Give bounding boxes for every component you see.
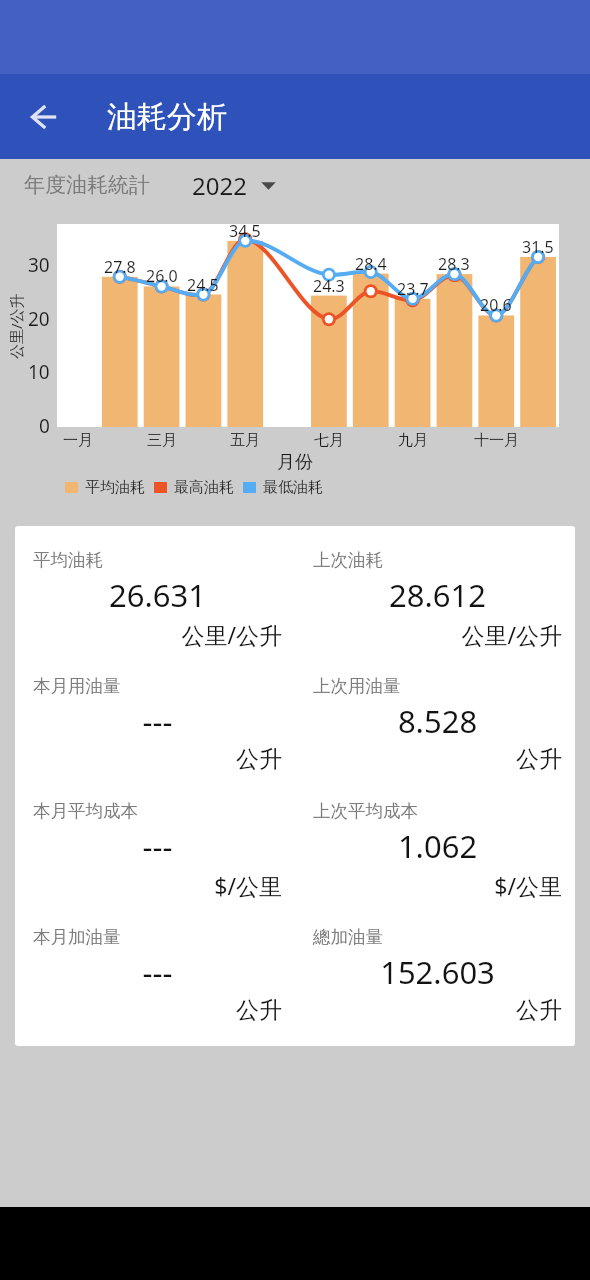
staticText: 公里/公升	[313, 619, 562, 650]
staticText: 10	[28, 359, 50, 385]
staticText: 公里/公升	[6, 293, 26, 359]
staticText: 總加油量	[313, 926, 383, 948]
staticText: 公升	[313, 996, 562, 1025]
staticText: 26.0	[146, 265, 178, 287]
staticText: 最低油耗	[263, 478, 323, 497]
staticText: 24.3	[313, 275, 345, 297]
staticText: 平均油耗	[33, 549, 103, 571]
staticText: 平均油耗	[85, 478, 145, 497]
staticText: 152.603	[313, 951, 562, 993]
staticText: 1.062	[313, 825, 562, 867]
staticText: 公升	[33, 996, 282, 1025]
staticText: 8.528	[313, 700, 562, 742]
staticText: 28.612	[313, 574, 562, 616]
staticText: 公升	[313, 745, 562, 774]
staticText: 0	[39, 413, 50, 439]
staticText: 26.631	[33, 574, 282, 616]
staticText: 五月	[230, 431, 260, 450]
staticText: 本月平均成本	[33, 800, 138, 822]
staticText: 27.8	[104, 256, 136, 278]
staticText: 本月用油量	[33, 675, 121, 697]
staticText: 28.3	[438, 253, 470, 275]
staticText: 31.5	[522, 236, 554, 258]
staticText: 34.5	[229, 220, 261, 242]
staticText: 九月	[398, 431, 428, 450]
button[interactable]: 2022	[192, 169, 276, 202]
staticText: 年度油耗統計	[24, 172, 150, 198]
staticText: 三月	[147, 431, 177, 450]
staticText: 公里/公升	[33, 619, 282, 650]
staticText: 23.7	[397, 278, 429, 300]
staticText: ---	[33, 951, 282, 993]
staticText: 月份	[277, 451, 313, 474]
staticText: 上次用油量	[313, 675, 401, 697]
staticText: 油耗分析	[107, 98, 227, 136]
staticText: ---	[33, 825, 282, 867]
staticText: 30	[28, 252, 50, 278]
button[interactable]: Back	[0, 74, 84, 159]
staticText: $/公里	[313, 870, 562, 901]
staticText: 七月	[314, 431, 344, 450]
staticText: 20.6	[480, 294, 512, 316]
staticText: 24.5	[187, 274, 219, 296]
staticText: 上次油耗	[313, 549, 383, 571]
staticText: 一月	[63, 431, 93, 450]
staticText: ---	[33, 700, 282, 742]
staticText: 上次平均成本	[313, 800, 418, 822]
staticText: 28.4	[355, 253, 387, 275]
staticText: 20	[28, 306, 50, 332]
staticText: 本月加油量	[33, 926, 121, 948]
staticText: 最高油耗	[174, 478, 234, 497]
staticText: 2022	[192, 169, 247, 202]
staticText: 十一月	[474, 431, 519, 450]
staticText: 公升	[33, 745, 282, 774]
staticText: $/公里	[33, 870, 282, 901]
